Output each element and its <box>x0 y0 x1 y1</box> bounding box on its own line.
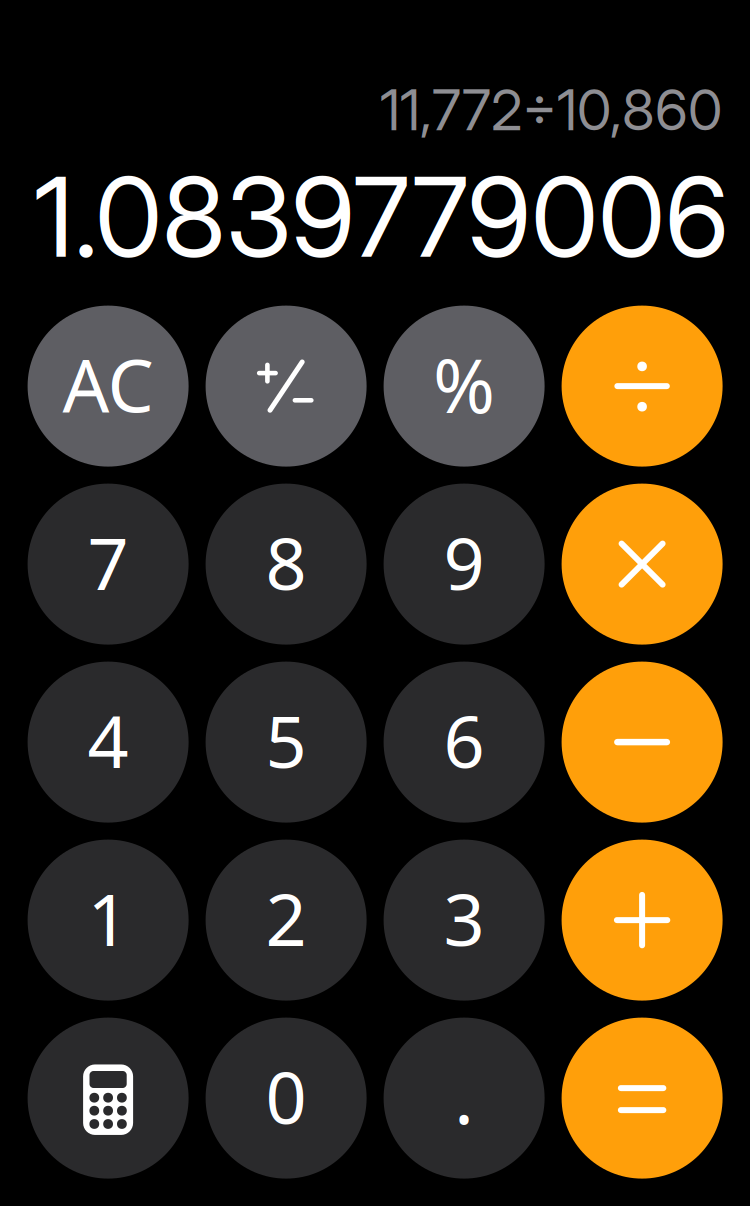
button[interactable]: Equals <box>562 1018 723 1179</box>
staticText: 1 <box>88 870 129 966</box>
button[interactable]: 3 <box>384 840 545 1001</box>
staticText: 6 <box>444 692 485 788</box>
staticText: % <box>433 334 495 434</box>
staticText: 4 <box>88 692 129 788</box>
button[interactable]: 2 <box>206 840 367 1001</box>
staticText: 7 <box>88 514 129 610</box>
button[interactable]: 0 <box>206 1018 367 1179</box>
button[interactable]: 5 <box>206 662 367 823</box>
staticText: AC <box>63 335 154 433</box>
staticText: 2 <box>266 870 307 966</box>
button[interactable]: . <box>384 1018 545 1179</box>
button[interactable]: 7 <box>28 484 189 645</box>
staticText: 9 <box>444 514 485 610</box>
button[interactable]: Add <box>562 840 723 1001</box>
staticText: 0 <box>266 1048 307 1144</box>
button[interactable]: Calculator <box>28 1018 189 1179</box>
staticText: 5 <box>266 692 307 788</box>
button[interactable]: 8 <box>206 484 367 645</box>
button[interactable]: 9 <box>384 484 545 645</box>
staticText: . <box>454 1045 474 1145</box>
button[interactable]: 6 <box>384 662 545 823</box>
staticText: 1.0839779006 <box>34 151 729 283</box>
button[interactable]: 4 <box>28 662 189 823</box>
button[interactable]: AC <box>28 306 189 467</box>
staticText: 3 <box>444 870 485 966</box>
staticText: 11,772÷10,860 <box>380 76 722 144</box>
button[interactable]: Plus minus <box>206 306 367 467</box>
button[interactable]: 1 <box>28 840 189 1001</box>
button[interactable]: Subtract <box>562 662 723 823</box>
button[interactable]: Multiply <box>562 484 723 645</box>
staticText: 8 <box>266 514 307 610</box>
button[interactable]: % <box>384 306 545 467</box>
button[interactable]: Divide <box>562 306 723 467</box>
